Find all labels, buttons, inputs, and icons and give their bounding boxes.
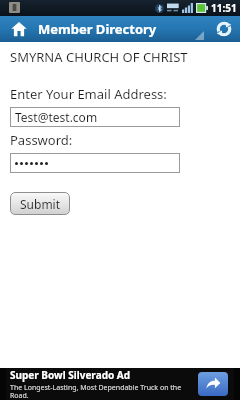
staticText: Test@test.com [15,109,98,125]
staticText: Submit [20,196,61,212]
button[interactable]: Home [0,16,38,42]
staticText: 11:51 [211,1,237,15]
button[interactable] [10,153,180,173]
staticText: Member Directory [38,20,157,38]
staticText: SMYRNA CHURCH OF CHRIST [10,48,188,66]
staticText: Password: [10,131,73,149]
button[interactable]: Super Bowl Silverado Ad [0,368,240,400]
button[interactable]: Open ad [198,372,228,396]
button[interactable]: Test@test.com [10,107,180,127]
button[interactable]: Refresh [208,16,240,42]
button[interactable]: Submit [10,192,70,215]
staticText: Enter Your Email Address: [10,85,167,103]
staticText: The Longest-Lasting, Most Dependable Tru… [10,383,190,400]
staticText: Super Bowl Silverado Ad [10,368,131,382]
